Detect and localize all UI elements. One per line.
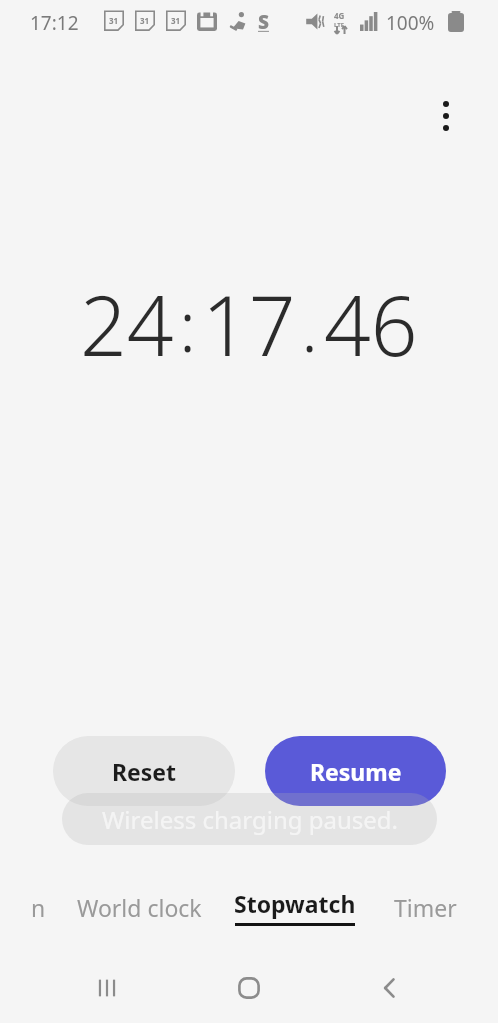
button[interactable]: Home	[214, 962, 284, 1014]
staticText: LTE	[334, 21, 345, 29]
button[interactable]: More options	[414, 84, 478, 148]
button[interactable]: Stopwatch	[225, 884, 365, 930]
staticText: 24	[80, 268, 174, 380]
staticText: :	[179, 277, 197, 372]
staticText: Wireless charging paused.	[102, 803, 398, 836]
staticText: Timer	[394, 892, 457, 923]
staticText: Resume	[310, 756, 402, 787]
staticText: World clock	[77, 892, 202, 923]
staticText: n	[31, 892, 46, 923]
staticText: 31	[109, 15, 119, 26]
staticText: Reset	[112, 756, 177, 787]
button[interactable]: Recents	[72, 962, 142, 1014]
staticText: 17:12	[30, 10, 79, 36]
staticText: 31	[171, 15, 181, 26]
staticText: 17	[202, 268, 296, 380]
staticText: S	[258, 9, 269, 35]
button[interactable]: n	[0, 884, 58, 930]
staticText: Stopwatch	[234, 888, 356, 919]
button[interactable]: Back	[355, 962, 425, 1014]
button[interactable]: Resume	[265, 736, 446, 806]
staticText: .	[301, 277, 319, 372]
staticText: 46	[324, 268, 418, 380]
staticText: 31	[140, 15, 150, 26]
button[interactable]: Timer	[370, 884, 480, 930]
button[interactable]: Reset	[53, 736, 235, 806]
staticText: 100%	[386, 10, 435, 36]
staticText: 4G	[334, 10, 345, 21]
button[interactable]: World clock	[62, 884, 217, 930]
